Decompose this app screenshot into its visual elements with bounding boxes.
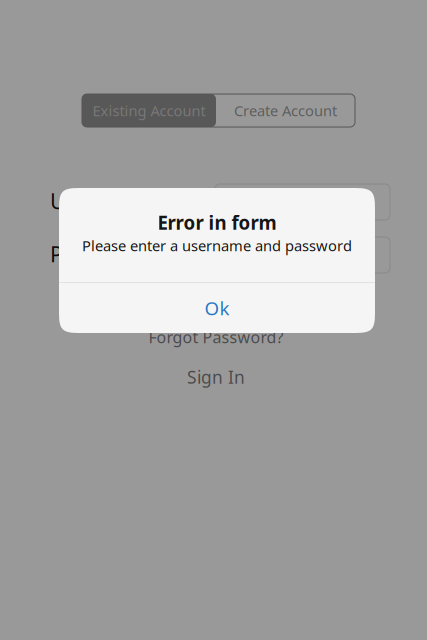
staticText: Ok <box>204 296 229 320</box>
staticText: Password <box>50 240 146 268</box>
button[interactable]: Ok <box>59 283 375 333</box>
button[interactable]: Forgot Password? <box>136 326 296 348</box>
staticText: Please enter a username and password <box>82 236 352 255</box>
staticText: Existing Account <box>92 101 205 120</box>
button[interactable]: Username <box>215 184 390 220</box>
button[interactable]: Create Account <box>216 94 355 127</box>
staticText: Username <box>50 187 154 215</box>
button[interactable]: Sign In <box>166 366 266 388</box>
staticText: Create Account <box>234 101 337 120</box>
button[interactable]: Existing Account <box>82 94 216 127</box>
staticText: Error in form <box>157 210 276 235</box>
staticText: Forgot Password? <box>148 326 283 348</box>
staticText: Sign In <box>187 365 245 388</box>
button[interactable]: Password <box>215 237 390 273</box>
